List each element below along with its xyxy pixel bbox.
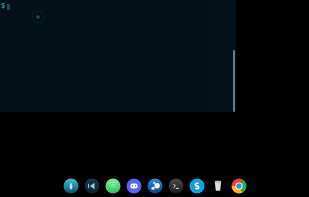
button[interactable]: Skype <box>189 178 205 194</box>
button[interactable]: Trash <box>210 178 226 194</box>
staticText: $ <box>1 1 6 11</box>
button[interactable]: Discord <box>126 178 142 194</box>
button[interactable]: Terminal <box>168 178 184 194</box>
button[interactable]: Chrome <box>231 178 247 194</box>
button[interactable]: Spotify <box>105 178 121 194</box>
button[interactable]: Voice assistant <box>63 178 79 194</box>
button[interactable]: Browser <box>147 178 163 194</box>
button[interactable]: Editor <box>84 178 100 194</box>
button[interactable]: $ <box>0 0 236 112</box>
other: Scroll bar <box>233 50 235 112</box>
